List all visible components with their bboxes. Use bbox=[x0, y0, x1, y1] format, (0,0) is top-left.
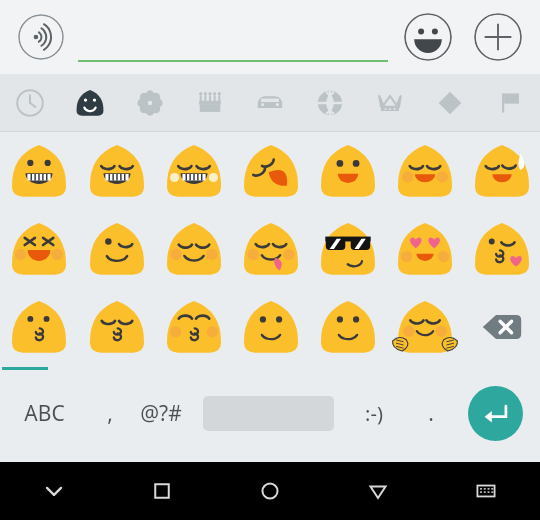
button[interactable]: Enter bbox=[468, 386, 523, 441]
button[interactable]: Emoji 14 bbox=[0, 288, 78, 366]
button[interactable]: Back bbox=[324, 462, 432, 520]
button[interactable]: Objects bbox=[360, 74, 420, 132]
button[interactable]: Emoji 1 bbox=[78, 132, 155, 210]
button[interactable]: Emoji 4 bbox=[309, 132, 386, 210]
button[interactable] bbox=[78, 34, 388, 62]
button[interactable]: Symbols bbox=[420, 74, 480, 132]
button[interactable]: Emoji 12 bbox=[386, 210, 463, 288]
button[interactable]: Travel bbox=[240, 74, 300, 132]
button[interactable]: Emoji 3 bbox=[232, 132, 309, 210]
button[interactable]: Emoji 0 bbox=[0, 132, 78, 210]
button[interactable]: . bbox=[407, 389, 455, 437]
button[interactable]: Emoji 15 bbox=[78, 288, 155, 366]
staticText: , bbox=[107, 399, 113, 428]
button[interactable]: Recents bbox=[108, 462, 216, 520]
staticText: ABC bbox=[24, 399, 65, 428]
button[interactable]: Emoji 8 bbox=[78, 210, 155, 288]
staticText: . bbox=[428, 399, 434, 428]
button[interactable]: Emoji 7 bbox=[0, 210, 78, 288]
button[interactable]: Emoji 9 bbox=[155, 210, 232, 288]
button[interactable]: Voice input bbox=[18, 14, 64, 60]
button[interactable]: Emoji 6 bbox=[463, 132, 540, 210]
button[interactable]: Food bbox=[180, 74, 240, 132]
button[interactable]: Emoji 19 bbox=[386, 288, 463, 366]
button[interactable]: Nature bbox=[120, 74, 180, 132]
button[interactable]: Emoji bbox=[404, 13, 452, 61]
button[interactable]: :-) bbox=[350, 389, 398, 437]
button[interactable]: Smileys bbox=[60, 74, 120, 132]
button[interactable]: Switch keyboard bbox=[432, 462, 540, 520]
button[interactable]: Activity bbox=[300, 74, 360, 132]
staticText: @?# bbox=[140, 399, 182, 428]
button[interactable]: , bbox=[86, 389, 134, 437]
button[interactable]: Home bbox=[216, 462, 324, 520]
button[interactable]: Emoji 5 bbox=[386, 132, 463, 210]
button[interactable]: Emoji 16 bbox=[155, 288, 232, 366]
button[interactable]: Emoji 17 bbox=[232, 288, 309, 366]
button[interactable]: Hide keyboard bbox=[0, 462, 108, 520]
button[interactable]: Emoji 18 bbox=[309, 288, 386, 366]
button[interactable]: Add bbox=[474, 13, 522, 61]
staticText: :-) bbox=[365, 400, 383, 427]
button[interactable]: Emoji 13 bbox=[463, 210, 540, 288]
button[interactable]: ABC bbox=[20, 389, 68, 437]
button[interactable]: Delete bbox=[463, 288, 540, 366]
button[interactable]: Flags bbox=[480, 74, 540, 132]
button[interactable]: @?# bbox=[137, 389, 185, 437]
button[interactable]: Emoji 10 bbox=[232, 210, 309, 288]
button[interactable]: Emoji 2 bbox=[155, 132, 232, 210]
button[interactable]: Emoji 11 bbox=[309, 210, 386, 288]
button[interactable]: Recent bbox=[0, 74, 60, 132]
